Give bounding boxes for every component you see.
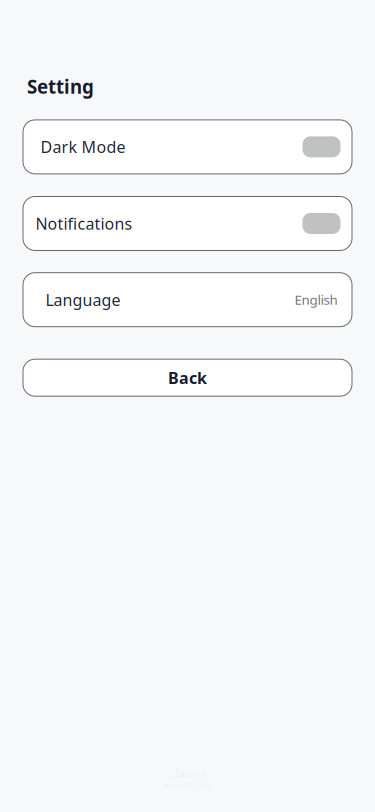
staticText: Setting (27, 74, 94, 99)
button[interactable]: Back (22, 359, 352, 397)
staticText: Back (168, 367, 207, 388)
staticText: Notifications (35, 213, 132, 234)
button[interactable]: Dark Mode (22, 119, 352, 174)
button[interactable]: Dark Mode, off (302, 136, 340, 157)
button[interactable]: Notifications, off (302, 213, 340, 234)
button[interactable]: Language (22, 272, 352, 327)
staticText: English (294, 291, 337, 308)
staticText: Dark Mode (40, 136, 125, 157)
staticText: Language (45, 289, 120, 310)
button[interactable]: Notifications (22, 196, 352, 251)
